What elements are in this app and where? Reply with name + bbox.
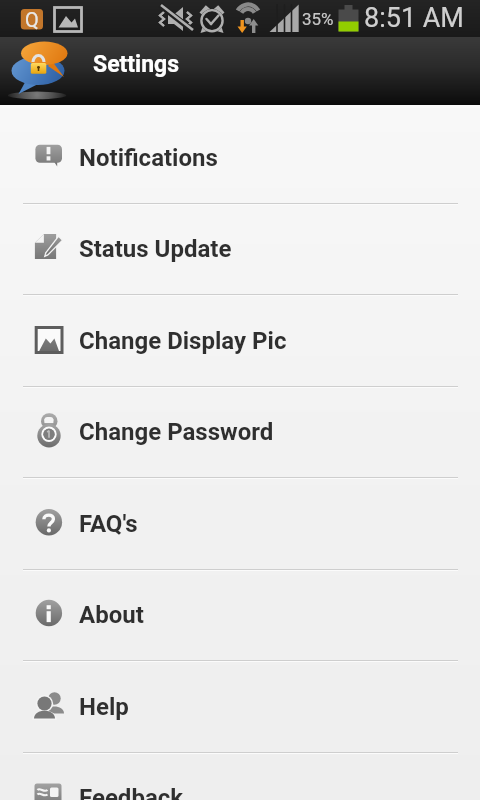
staticText: Settings — [93, 51, 180, 78]
button[interactable]: About — [0, 569, 480, 661]
staticText: Change Display Pic — [79, 327, 287, 355]
staticText: Feedback — [79, 784, 184, 800]
button[interactable]: Change Display Pic — [0, 295, 480, 387]
button[interactable]: Notifications — [0, 112, 480, 204]
staticText: Change Password — [79, 418, 274, 446]
staticText: Status Update — [79, 235, 232, 263]
staticText: Q — [25, 8, 39, 31]
button[interactable]: FAQ's — [0, 478, 480, 570]
button[interactable]: Help — [0, 661, 480, 753]
button[interactable]: Change Password — [0, 386, 480, 478]
staticText: Notifications — [79, 144, 218, 172]
staticText: About — [79, 601, 144, 629]
staticText: Help — [79, 693, 129, 721]
button[interactable]: Feedback — [0, 752, 480, 800]
staticText: FAQ's — [79, 510, 138, 538]
button[interactable]: Settings, navigate up — [0, 37, 200, 105]
button[interactable]: Status Update — [0, 203, 480, 295]
staticText: 8:51 AM — [364, 2, 464, 34]
staticText: 35% — [302, 9, 334, 29]
